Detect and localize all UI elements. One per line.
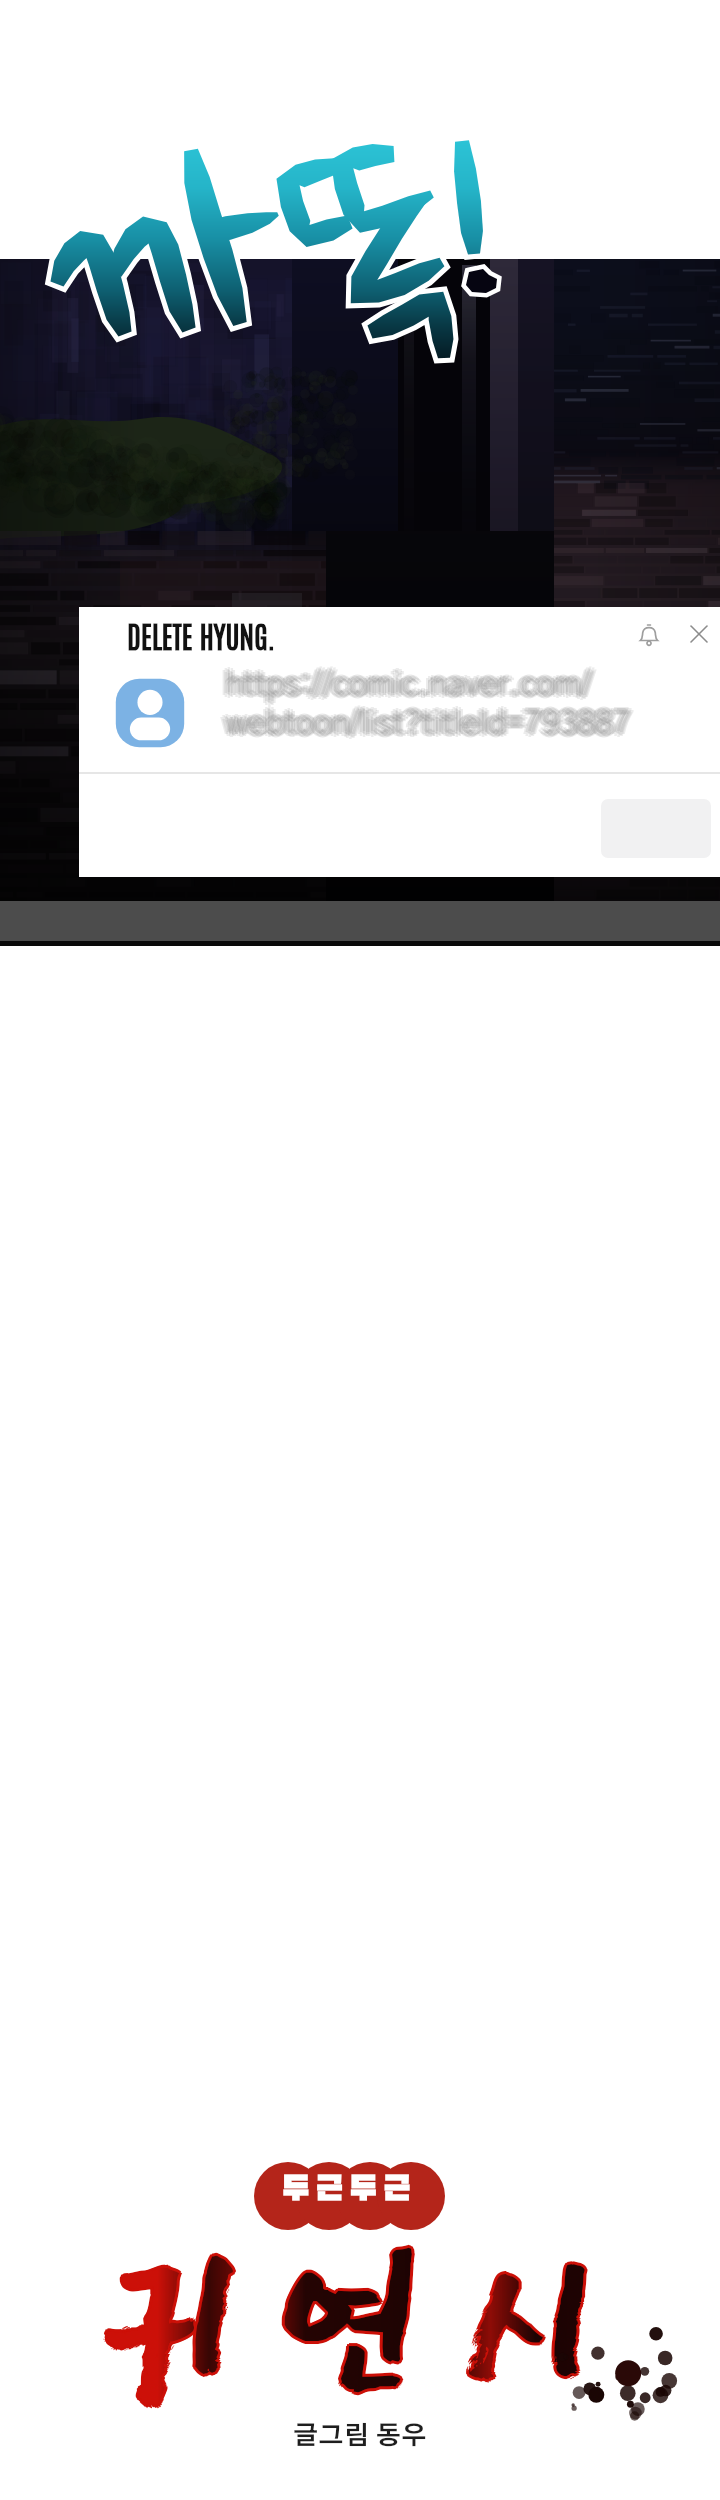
staticText: 귀연시 bbox=[55, 2200, 695, 2428]
staticText: DELETE HYUNG. bbox=[127, 615, 276, 654]
staticText: 귀연시 bbox=[51, 2204, 691, 2432]
staticText: 귀연시 bbox=[49, 2206, 689, 2434]
staticText: https://comic.naver.com/ bbox=[222, 671, 589, 703]
staticText: https://comic.naver.com/ bbox=[227, 670, 594, 702]
staticText: webtoon/list?titleId=793887 bbox=[222, 706, 628, 738]
staticText: 글그림 동우 bbox=[160, 2424, 560, 2449]
staticText: https://comic.naver.com/ bbox=[222, 667, 589, 699]
staticText: https://comic.naver.com/ bbox=[224, 668, 591, 700]
staticText: 귀연시 bbox=[51, 2208, 691, 2436]
staticText: webtoon/list?titleId=793887 bbox=[225, 708, 631, 740]
staticText: webtoon/list?titleId=793887 bbox=[224, 707, 630, 739]
staticText: 귀연시 bbox=[43, 2200, 683, 2428]
button[interactable]: Notification settings bbox=[621, 606, 677, 662]
staticText: 귀연시 bbox=[52, 2206, 692, 2434]
staticText: https://comic.naver.com/ bbox=[228, 667, 595, 699]
staticText: 귀연시 bbox=[49, 2198, 689, 2426]
staticText: 귀연시 bbox=[49, 2203, 689, 2431]
staticText: 귀연시 bbox=[55, 2212, 695, 2440]
staticText: https://comic.naver.com/ bbox=[228, 671, 595, 703]
staticText: webtoon/list?titleId=793887 bbox=[230, 708, 636, 740]
button[interactable]: Close bbox=[671, 606, 720, 662]
staticText: https://comic.naver.com/ bbox=[220, 669, 587, 701]
staticText: webtoon/list?titleId=793887 bbox=[228, 706, 634, 738]
staticText: https://comic.naver.com/ bbox=[230, 669, 597, 701]
staticText: https://comic.naver.com/ bbox=[225, 672, 592, 704]
staticText: 귀연시 bbox=[49, 2214, 689, 2442]
staticText: webtoon/list?titleId=793887 bbox=[222, 710, 628, 742]
staticText: 귀연시 bbox=[41, 2206, 681, 2434]
staticText: 귀연시 bbox=[57, 2206, 697, 2434]
staticText: 귀연시 bbox=[47, 2208, 687, 2436]
staticText: webtoon/list?titleId=793887 bbox=[225, 711, 631, 743]
staticText: https://comic.naver.com/ bbox=[225, 666, 592, 698]
staticText: 귀연시 bbox=[46, 2206, 686, 2434]
staticText: webtoon/list?titleId=793887 bbox=[228, 710, 634, 742]
staticText: 두근두근 bbox=[254, 2174, 445, 2207]
staticText: 귀연시 bbox=[43, 2212, 683, 2440]
staticText: webtoon/list?titleId=793887 bbox=[225, 705, 631, 737]
staticText: 귀연시 bbox=[49, 2209, 689, 2437]
staticText: 귀연시 bbox=[47, 2204, 687, 2432]
staticText: 귀연시 bbox=[49, 2206, 689, 2434]
staticText: webtoon/list?titleId=793887 bbox=[227, 709, 633, 741]
staticText: webtoon/list?titleId=793887 bbox=[220, 708, 626, 740]
staticText: https://comic.naver.com/ bbox=[225, 669, 592, 701]
